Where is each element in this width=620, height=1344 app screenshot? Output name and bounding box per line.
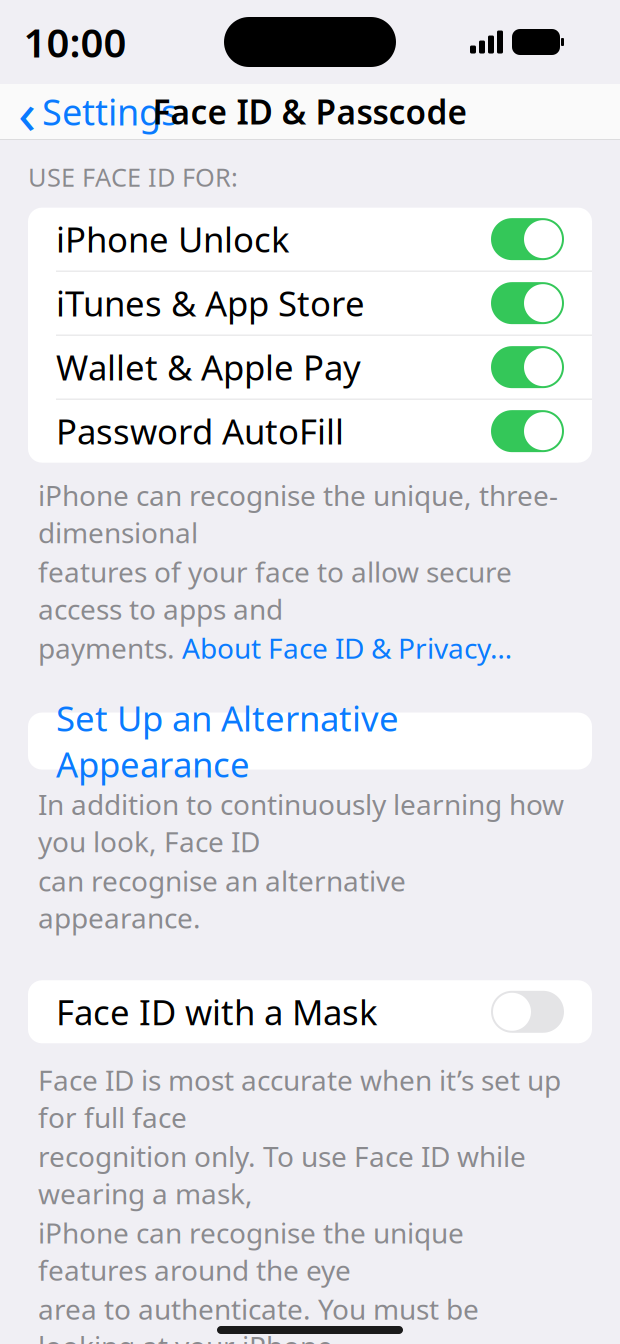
button[interactable]: On (491, 410, 564, 452)
button[interactable]: Set Up an Alternative Appearance (28, 713, 592, 770)
button[interactable]: Wallet & Apple Pay (28, 336, 592, 399)
staticText: iPhone Unlock (56, 216, 290, 262)
staticText: In addition to continuously learning how… (38, 786, 564, 860)
staticText: Password AutoFill (56, 408, 344, 454)
button[interactable]: Off (491, 991, 564, 1033)
staticText: features of your face to allow secure ac… (38, 553, 512, 627)
button[interactable]: Password AutoFill (28, 400, 592, 463)
button[interactable]: iTunes & App Store (28, 272, 592, 335)
staticText: can recognise an alternative appearance. (38, 862, 406, 936)
button[interactable]: On (491, 218, 564, 260)
staticText: Face ID with a Mask (56, 989, 378, 1035)
staticText: payments. (38, 629, 182, 667)
button[interactable]: On (491, 346, 564, 388)
staticText: iTunes & App Store (56, 280, 365, 326)
button[interactable]: Face ID with a Mask (28, 980, 592, 1043)
staticText: About Face ID & Privacy… (182, 629, 512, 667)
staticText: USE FACE ID FOR: (28, 160, 238, 194)
staticText: iPhone can recognise the unique, three-d… (38, 477, 558, 551)
button[interactable]: ‹ (0, 85, 188, 137)
button[interactable]: On (491, 282, 564, 324)
staticText: Face ID & Passcode (152, 89, 467, 134)
staticText: Settings (42, 88, 178, 135)
staticText: recognition only. To use Face ID while w… (38, 1138, 526, 1212)
staticText: Face ID is most accurate when it’s set u… (38, 1061, 561, 1136)
button[interactable]: iPhone Unlock (28, 208, 592, 271)
staticText: iPhone can recognise the unique features… (38, 1214, 464, 1288)
staticText: area to authenticate. You must be lookin… (38, 1290, 479, 1344)
staticText: ‹ (18, 72, 36, 150)
staticText: Set Up an Alternative Appearance (56, 695, 399, 787)
staticText: Wallet & Apple Pay (56, 344, 361, 390)
staticText: 10:00 (23, 15, 126, 68)
